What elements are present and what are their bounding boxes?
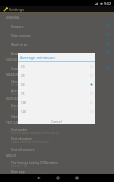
button[interactable]: 100 bbox=[18, 98, 95, 107]
button[interactable]: Work in air bbox=[0, 39, 114, 48]
staticText: 50 measurements bbox=[11, 92, 35, 96]
button[interactable]: Sounds bbox=[0, 63, 114, 72]
staticText: Test audio bbox=[11, 127, 27, 131]
staticText: Rate this app on Google Play bbox=[11, 173, 49, 177]
staticText: Test the audio interface of the device bbox=[11, 131, 60, 135]
staticText: Checking speed bbox=[11, 79, 36, 83]
staticText: GENERAL bbox=[6, 16, 20, 20]
staticText: Settings bbox=[9, 7, 25, 12]
staticText: Cancel bbox=[51, 119, 62, 124]
staticText: ABOUT bbox=[6, 154, 17, 158]
staticText: Sensors bbox=[11, 24, 24, 28]
staticText: Decimal places bbox=[11, 103, 35, 107]
button[interactable]: The Sensor Lab by CDRandom bbox=[0, 159, 114, 168]
staticText: 10 bbox=[21, 65, 25, 69]
button[interactable]: Test audio bbox=[0, 126, 114, 135]
staticText: 2 decimal places bbox=[11, 107, 33, 111]
button[interactable]: Test all sensors bbox=[0, 144, 114, 153]
staticText: MEASURE bbox=[6, 73, 21, 77]
staticText: SOUND bbox=[6, 58, 17, 62]
button[interactable]: Test vibration bbox=[0, 135, 114, 144]
staticText: Sounds bbox=[11, 66, 23, 70]
staticText: 20 measurements per second bbox=[11, 83, 51, 87]
staticText: Work in air bbox=[11, 42, 28, 46]
staticText: DISPLAY bbox=[6, 97, 19, 101]
button[interactable]: Rate app bbox=[0, 168, 114, 177]
staticText: Average minimum bbox=[11, 88, 40, 92]
button[interactable]: 120 bbox=[18, 107, 95, 116]
button[interactable]: Sensors bbox=[0, 21, 114, 30]
button[interactable]: Recent apps bbox=[67, 174, 86, 182]
staticText: 100 bbox=[21, 101, 26, 105]
button[interactable]: Average minimum bbox=[0, 87, 114, 96]
staticText: Average minimum bbox=[20, 55, 55, 60]
staticText: 120 bbox=[21, 110, 26, 114]
staticText: Vibrate on result bbox=[11, 114, 37, 118]
button[interactable]: 10 bbox=[18, 62, 95, 71]
staticText: Take screens bbox=[11, 33, 31, 37]
staticText: Test all sensors bbox=[11, 147, 35, 151]
staticText: TEST AND TUNE bbox=[6, 121, 30, 125]
staticText: The Sensor Lab by CDRandom bbox=[11, 160, 58, 164]
staticText: Test vibration bbox=[11, 136, 32, 140]
button[interactable]: 75 bbox=[18, 89, 95, 98]
staticText: Version 1.20 bbox=[11, 164, 28, 168]
staticText: 50 bbox=[21, 83, 25, 87]
button[interactable]: Checking speed bbox=[0, 78, 114, 87]
button[interactable]: 50 bbox=[18, 80, 95, 89]
staticText: 75 bbox=[21, 92, 25, 96]
staticText: 9:52 bbox=[104, 1, 112, 6]
staticText: 20 bbox=[21, 74, 25, 78]
button[interactable]: Home bbox=[48, 174, 67, 182]
staticText: Check vibration of the device bbox=[11, 140, 49, 144]
button[interactable]: Decimal places bbox=[0, 102, 114, 111]
button[interactable]: Cancel bbox=[18, 118, 95, 124]
button[interactable]: 20 bbox=[18, 71, 95, 80]
staticText: Rate app bbox=[11, 169, 25, 173]
button[interactable]: Auto rotate bbox=[0, 48, 114, 57]
button[interactable]: Vibrate on result bbox=[0, 111, 114, 120]
button[interactable]: Back bbox=[29, 174, 48, 182]
button[interactable]: Take screens bbox=[0, 30, 114, 39]
staticText: Auto rotate bbox=[11, 51, 29, 55]
